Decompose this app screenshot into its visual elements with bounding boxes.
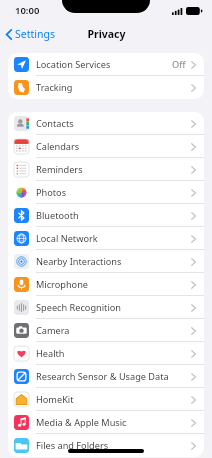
staticText: Bluetooth [36,209,191,222]
staticText: Media & Apple Music [36,416,191,429]
staticText: Research Sensor & Usage Data [36,370,191,383]
staticText: 10:00 [15,4,40,17]
button[interactable]: Photos [8,181,204,204]
button[interactable]: Research Sensor & Usage Data [8,365,204,388]
staticText: Tracking [36,81,191,94]
staticText: Off [172,58,186,71]
button[interactable]: Contacts [8,112,204,135]
staticText: Privacy [87,27,126,41]
staticText: Nearby Interactions [36,255,191,268]
staticText: Microphone [36,278,191,291]
button[interactable]: Nearby Interactions [8,250,204,273]
button[interactable]: Tracking [8,76,204,99]
button[interactable]: Files and Folders [8,434,204,457]
staticText: Local Network [36,232,191,245]
staticText: Settings [15,27,55,41]
button[interactable]: Calendars [8,135,204,158]
staticText: Health [36,347,191,360]
staticText: Location Services [36,58,172,71]
button[interactable]: Bluetooth [8,204,204,227]
staticText: Files and Folders [36,439,191,452]
button[interactable]: Media & Apple Music [8,411,204,434]
button[interactable]: Location Services [8,53,204,76]
staticText: Contacts [36,117,191,130]
staticText: Reminders [36,163,191,176]
button[interactable]: Settings [0,23,63,45]
button[interactable]: Microphone [8,273,204,296]
button[interactable]: Speech Recognition [8,296,204,319]
staticText: Speech Recognition [36,301,191,314]
staticText: Photos [36,186,191,199]
button[interactable]: Local Network [8,227,204,250]
staticText: HomeKit [36,393,191,406]
button[interactable]: Camera [8,319,204,342]
staticText: Calendars [36,140,191,153]
staticText: Camera [36,324,191,337]
button[interactable]: Reminders [8,158,204,181]
button[interactable]: HomeKit [8,388,204,411]
button[interactable]: Health [8,342,204,365]
